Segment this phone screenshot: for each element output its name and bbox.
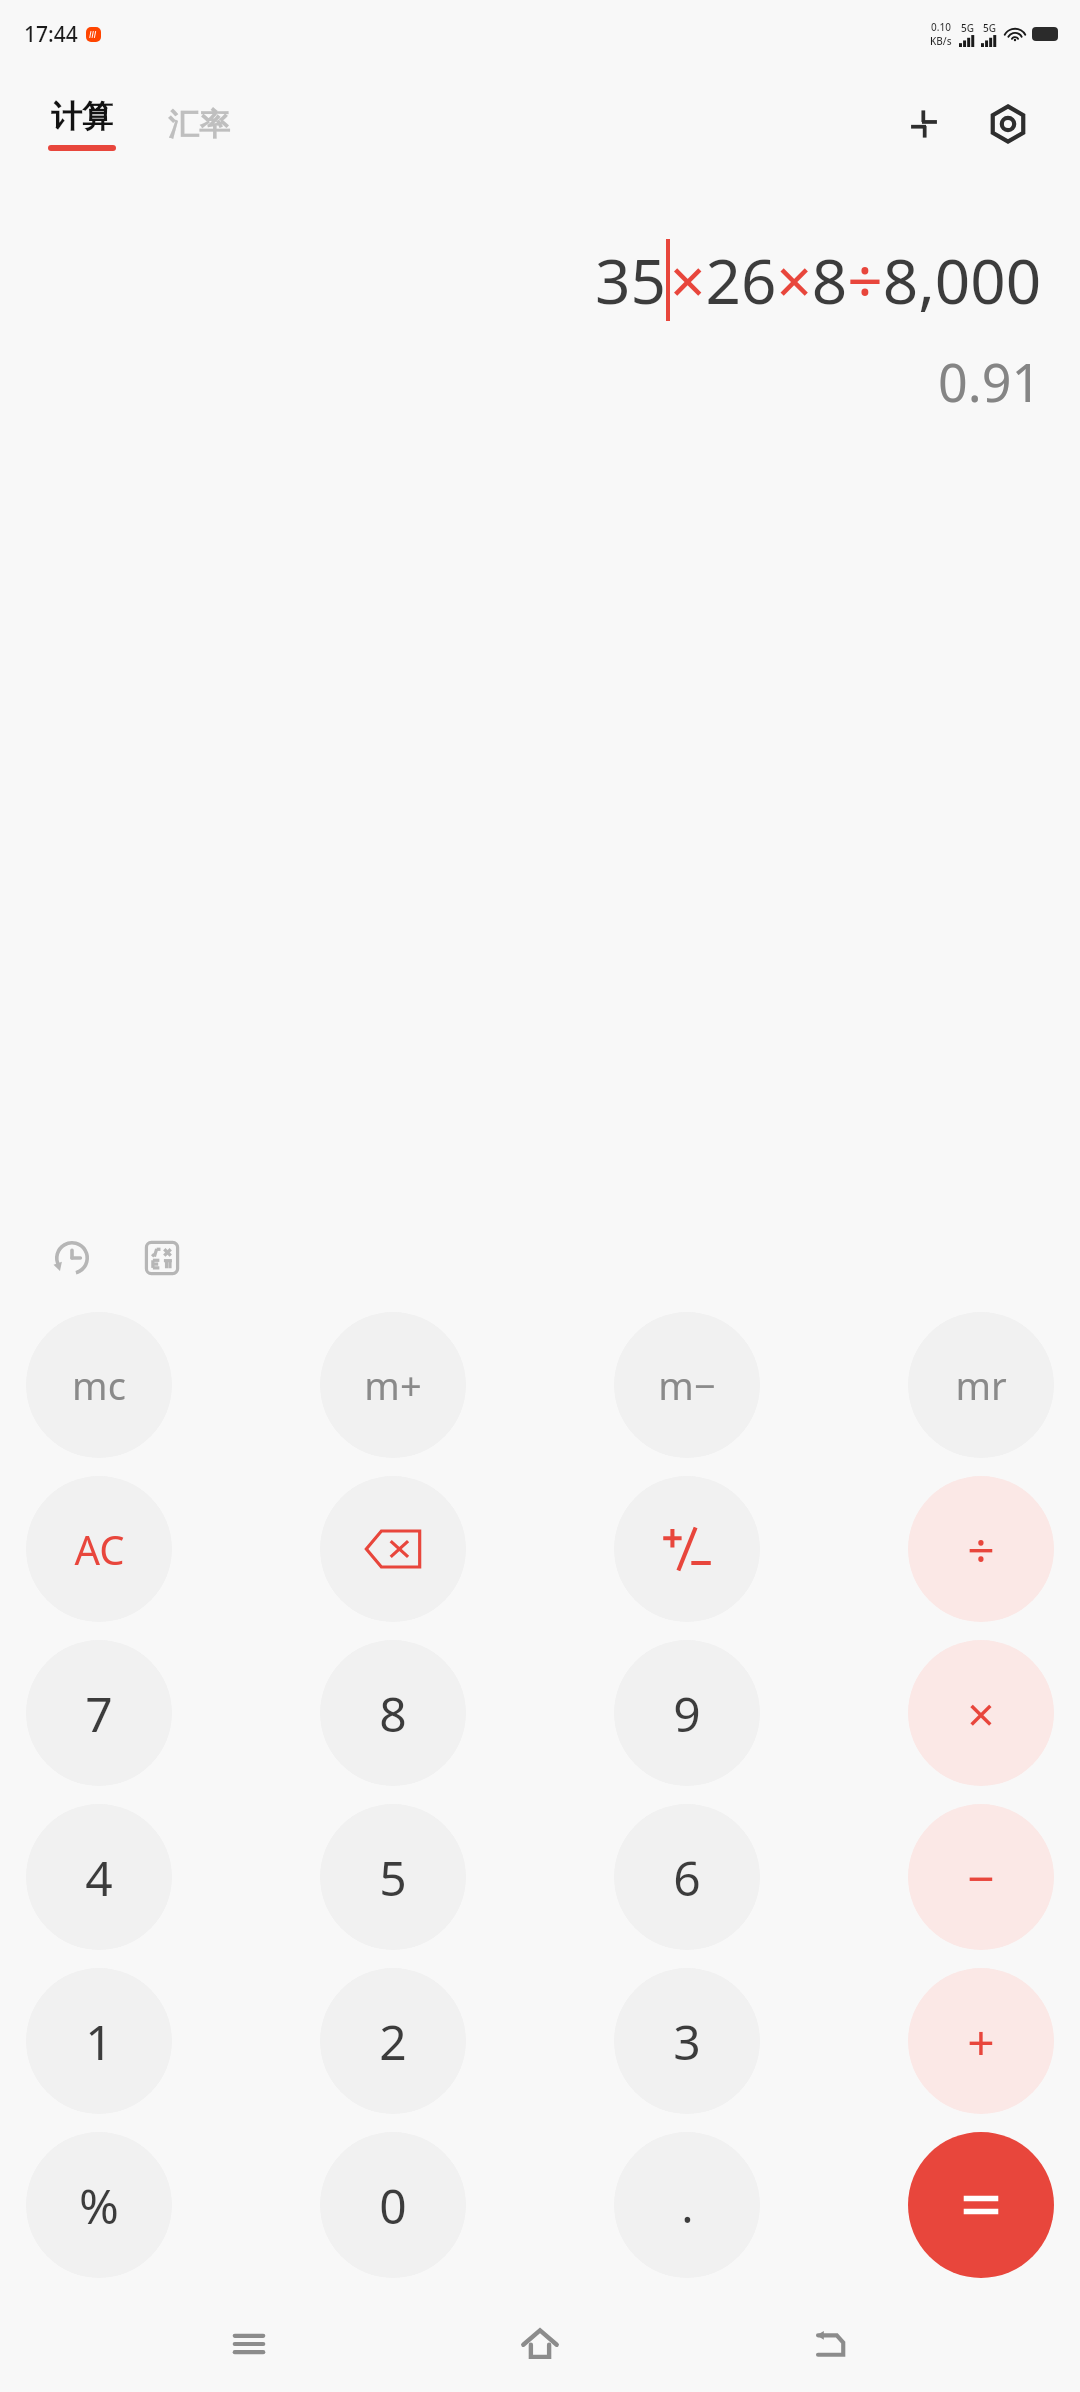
staticText: × [967, 1681, 995, 1746]
staticText: 9 [673, 1681, 701, 1746]
staticText: ×26×8÷8,000 [670, 238, 1042, 322]
staticText: . [681, 2174, 694, 2237]
staticText: 5 [379, 1845, 407, 1910]
staticText: 5G [961, 21, 974, 35]
staticText: 35 [595, 238, 666, 322]
staticText: mc [72, 1359, 126, 1411]
button[interactable]: 7 [26, 1640, 172, 1786]
button[interactable]: + [908, 1968, 1054, 2114]
button[interactable]: % [26, 2132, 172, 2278]
button[interactable]: mc [26, 1312, 172, 1458]
button[interactable]: 4 [26, 1804, 172, 1950]
button[interactable]: 3 [614, 1968, 760, 2114]
button[interactable]: − [908, 1804, 1054, 1950]
button[interactable]: mr [908, 1312, 1054, 1458]
staticText: 8 [379, 1681, 407, 1746]
staticText: m− [658, 1359, 716, 1411]
staticText: 6 [673, 1845, 701, 1910]
button[interactable]: Plus minus [614, 1476, 760, 1622]
button[interactable]: Home [498, 2302, 582, 2386]
button[interactable]: 汇率 [164, 97, 234, 152]
button[interactable]: m+ [320, 1312, 466, 1458]
button[interactable]: × [908, 1640, 1054, 1786]
button[interactable]: 6 [614, 1804, 760, 1950]
button[interactable]: m− [614, 1312, 760, 1458]
button[interactable]: Equals [908, 2132, 1054, 2278]
staticText: KB/s [930, 34, 952, 48]
staticText: AC [74, 1522, 125, 1576]
staticText: 4 [85, 1845, 113, 1910]
staticText: 17:44 [24, 20, 78, 49]
staticText: m+ [364, 1359, 422, 1411]
button[interactable]: Delete [320, 1476, 466, 1622]
staticText: 2 [379, 2009, 407, 2074]
button[interactable]: Scientific [130, 1226, 194, 1290]
button[interactable]: Back [789, 2302, 873, 2386]
button[interactable]: ÷ [908, 1476, 1054, 1622]
button[interactable]: AC [26, 1476, 172, 1622]
staticText: ÷ [967, 1517, 995, 1582]
staticText: 7 [85, 1681, 113, 1746]
button[interactable]: Settings [980, 96, 1036, 152]
staticText: mr [955, 1359, 1007, 1411]
staticText: − [967, 1845, 995, 1910]
button[interactable]: 计算 [44, 97, 120, 151]
staticText: 汇率 [168, 105, 230, 144]
staticText: 0.91 [938, 346, 1042, 417]
staticText: % [79, 2173, 119, 2238]
staticText: 1 [85, 2009, 113, 2074]
staticText: 0.10 [931, 20, 951, 34]
button[interactable]: 0 [320, 2132, 466, 2278]
staticText: + [967, 2009, 995, 2074]
button[interactable]: Recents [207, 2302, 291, 2386]
button[interactable]: History [40, 1226, 104, 1290]
staticText: 计算 [51, 97, 113, 136]
staticText: 5G [983, 21, 996, 35]
button[interactable]: 8 [320, 1640, 466, 1786]
button[interactable]: 9 [614, 1640, 760, 1786]
button[interactable]: 5 [320, 1804, 466, 1950]
staticText: 3 [673, 2009, 701, 2074]
staticText: 0 [379, 2173, 407, 2238]
button[interactable]: Collapse [896, 96, 952, 152]
button[interactable]: . [614, 2132, 760, 2278]
button[interactable]: 2 [320, 1968, 466, 2114]
button[interactable]: 1 [26, 1968, 172, 2114]
